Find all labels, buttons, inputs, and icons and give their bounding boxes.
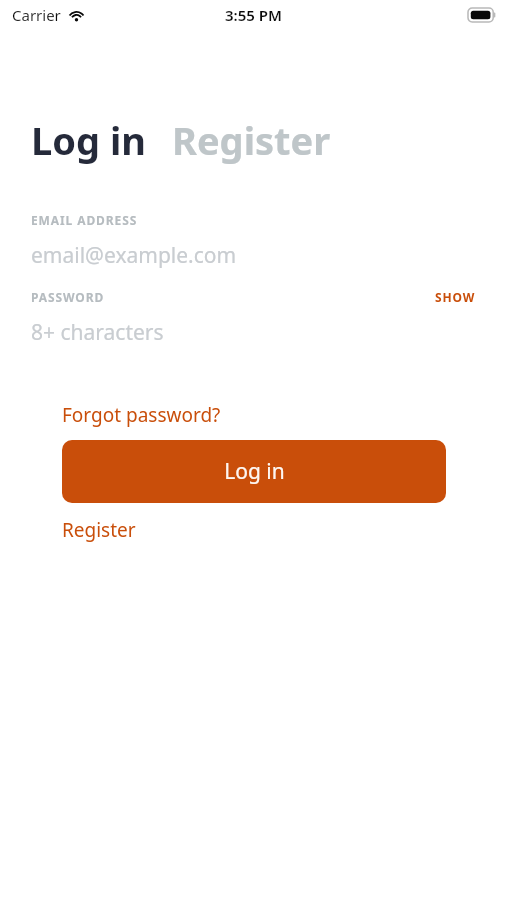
button[interactable]: email@example.com — [31, 240, 476, 270]
staticText: EMAIL ADDRESS — [31, 212, 138, 228]
staticText: Carrier — [12, 5, 61, 25]
staticText: Log in — [31, 114, 146, 166]
button[interactable]: Register — [172, 114, 331, 166]
staticText: Forgot password? — [62, 402, 221, 428]
staticText: PASSWORD — [31, 289, 105, 305]
button[interactable]: Log in — [62, 440, 446, 503]
staticText: email@example.com — [31, 241, 237, 270]
button[interactable]: 8+ characters — [31, 317, 476, 347]
staticText: Log in — [224, 457, 285, 486]
button[interactable]: Forgot password? — [62, 402, 221, 428]
staticText: 3:55 PM — [225, 5, 282, 25]
staticText: SHOW — [435, 289, 476, 305]
staticText: Register — [172, 114, 331, 166]
button[interactable]: Register — [62, 517, 136, 543]
button[interactable]: Log in — [31, 114, 146, 166]
button[interactable]: SHOW — [435, 289, 476, 305]
staticText: Register — [62, 517, 136, 543]
staticText: 8+ characters — [31, 318, 164, 347]
